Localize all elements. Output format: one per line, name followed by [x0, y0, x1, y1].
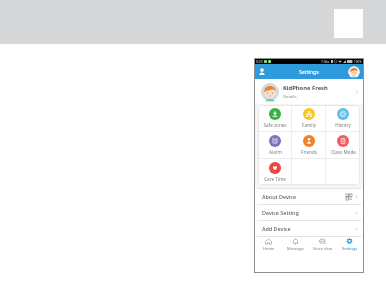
button[interactable]: Friends	[292, 132, 326, 158]
staticText: Device Setting	[262, 209, 299, 216]
button[interactable]: Care Time	[258, 159, 292, 185]
button[interactable]: KidPhone Fresh	[255, 79, 363, 104]
staticText: History	[335, 122, 351, 128]
button[interactable]: Alarm	[258, 132, 292, 158]
button[interactable]: About Device	[255, 189, 363, 204]
staticText: Class Mode	[331, 149, 356, 155]
staticText: Friends	[301, 149, 317, 155]
button[interactable]: History	[326, 105, 360, 131]
staticText: About Device	[262, 193, 296, 200]
staticText: Safe zones	[263, 122, 287, 128]
button[interactable]: Account	[259, 68, 265, 75]
staticText: Alarm	[269, 149, 282, 155]
button[interactable]: Home	[255, 237, 282, 253]
staticText: 9:23	[256, 59, 263, 64]
staticText: Voice chat	[313, 246, 333, 251]
staticText: Add Device	[262, 225, 291, 232]
staticText: Message	[287, 246, 304, 251]
button[interactable]: Voice chat	[309, 237, 336, 253]
staticText: Details	[283, 94, 297, 100]
staticText: Home	[263, 246, 275, 251]
staticText: Family	[302, 122, 316, 128]
button[interactable]: Class Mode	[326, 132, 360, 158]
button[interactable]: Family	[292, 105, 326, 131]
staticText: 100%	[354, 60, 362, 64]
button[interactable]: Add Device	[255, 221, 363, 236]
staticText: 7:36a	[321, 60, 330, 64]
staticText: Settings	[299, 68, 319, 75]
staticText: Settings	[342, 246, 358, 251]
staticText: KidPhone Fresh	[283, 84, 328, 92]
button[interactable]: Safe zones	[258, 105, 292, 131]
button[interactable]: Settings	[336, 237, 363, 253]
staticText: Care Time	[264, 176, 286, 182]
button[interactable]: Profile	[348, 66, 360, 78]
button[interactable]: Device Setting	[255, 205, 363, 220]
button[interactable]: Message	[282, 237, 309, 253]
